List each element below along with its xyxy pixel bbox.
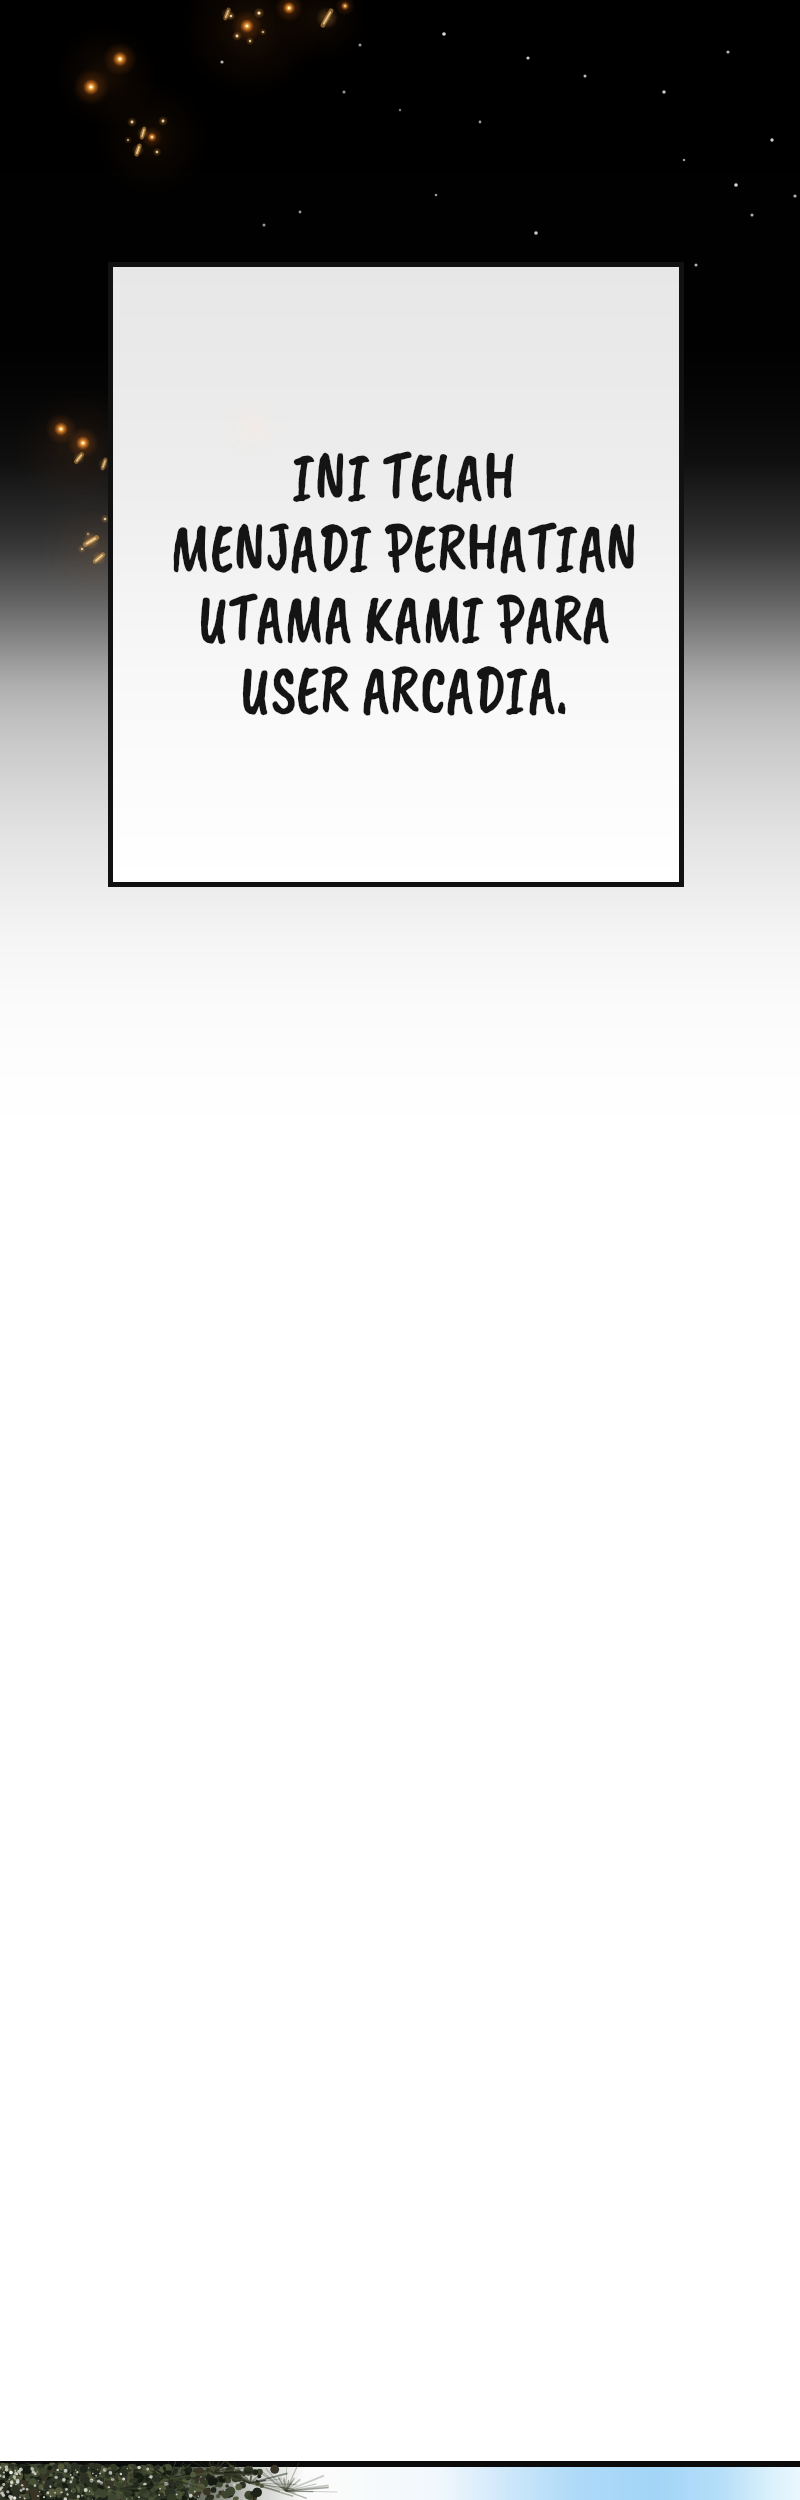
button[interactable]: Toggle reader controls bbox=[0, 0, 800, 2500]
